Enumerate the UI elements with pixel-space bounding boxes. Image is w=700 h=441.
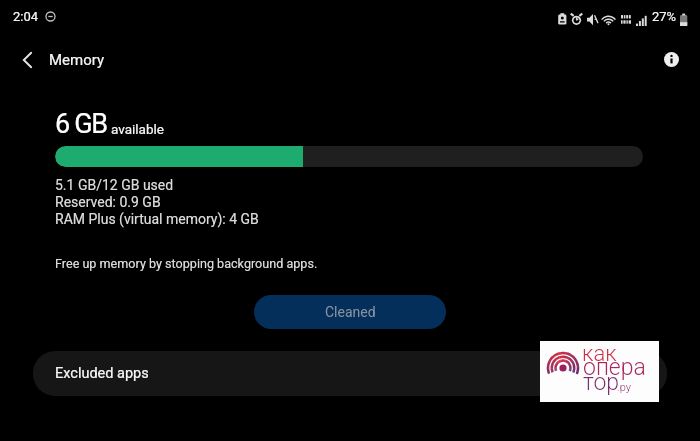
staticText: available <box>111 121 164 137</box>
staticText: тор <box>583 369 620 396</box>
staticText: опера <box>583 354 646 381</box>
staticText: как <box>582 341 617 367</box>
staticText: Memory <box>49 51 105 69</box>
staticText: 2:04 <box>13 9 39 24</box>
staticText: 5.1 GB/12 GB used <box>55 177 174 193</box>
button[interactable]: Back <box>6 39 48 81</box>
staticText: Free up memory by stopping background ap… <box>55 256 318 271</box>
staticText: Cleaned <box>325 304 376 320</box>
staticText: .ру <box>617 381 631 394</box>
staticText: Reserved: 0.9 GB <box>55 194 161 210</box>
staticText: RAM Plus (virtual memory): 4 GB <box>55 211 259 227</box>
staticText: 27% <box>652 9 677 24</box>
button[interactable]: Excluded apps <box>33 351 667 396</box>
staticText: 6 GB <box>55 108 107 140</box>
staticText: Excluded apps <box>55 365 149 382</box>
button[interactable]: Cleaned <box>254 295 446 329</box>
button[interactable]: Information <box>657 45 685 73</box>
